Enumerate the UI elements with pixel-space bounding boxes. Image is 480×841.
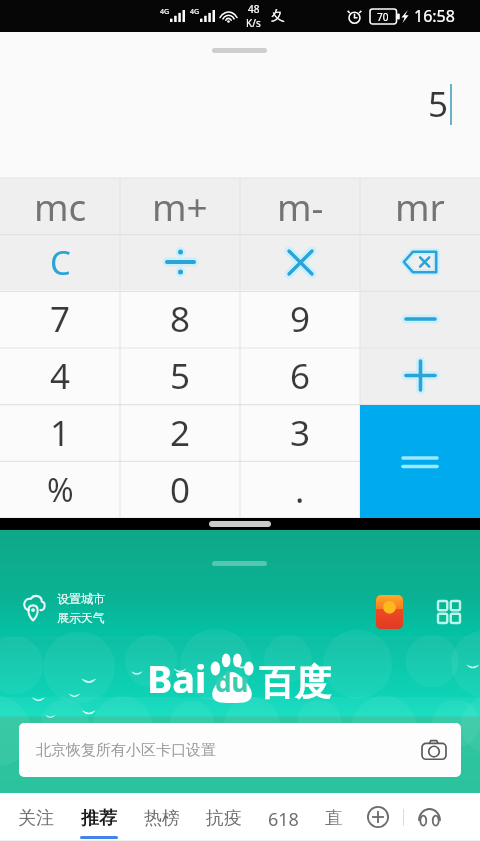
button[interactable]: C (0, 234, 120, 290)
staticText: mr (395, 181, 445, 231)
button[interactable]: 关注 (18, 793, 54, 841)
button[interactable]: 设置城市 (22, 591, 105, 625)
staticText: 北京恢复所有小区卡口设置 (36, 741, 216, 760)
button[interactable]: Red packet (376, 595, 403, 629)
staticText: 抗疫 (206, 807, 242, 830)
button[interactable]: 0 (120, 461, 240, 518)
button[interactable]: 7 (0, 290, 120, 347)
staticText: 7 (50, 295, 71, 343)
button[interactable]: % (0, 461, 120, 518)
button[interactable]: Equals (360, 405, 480, 518)
staticText: 6 (290, 352, 311, 400)
staticText: m+ (152, 181, 208, 231)
button[interactable]: Multiply (240, 234, 360, 290)
button[interactable]: . (240, 461, 360, 518)
staticText: % (47, 468, 74, 512)
staticText: 直播 (325, 807, 343, 830)
button[interactable]: 8 (120, 290, 240, 347)
staticText: 设置城市 (57, 591, 105, 606)
staticText: 百度 (259, 660, 331, 705)
button[interactable]: 北京恢复所有小区卡口设置 (19, 723, 461, 777)
button[interactable]: 直播 (325, 793, 343, 841)
staticText: . (295, 466, 305, 514)
button[interactable]: 1 (0, 404, 120, 461)
staticText: mc (34, 181, 87, 231)
staticText: 0 (170, 466, 191, 514)
button[interactable]: Add (367, 806, 389, 828)
button[interactable]: 热榜 (144, 793, 180, 841)
button[interactable]: Audio (418, 808, 441, 826)
staticText: 2 (170, 409, 191, 457)
button[interactable]: Menu (438, 601, 460, 623)
button[interactable]: 2 (120, 404, 240, 461)
staticText: 48 (248, 2, 260, 16)
staticText: 3 (290, 409, 311, 457)
staticText: 推荐 (81, 807, 117, 830)
staticText: 夊 (271, 7, 285, 25)
staticText: 关注 (18, 807, 54, 830)
button[interactable]: Minus (360, 290, 480, 347)
button[interactable]: 5 (120, 347, 240, 404)
button[interactable]: mr (360, 178, 480, 234)
staticText: 8 (170, 295, 191, 343)
staticText: m- (277, 181, 324, 231)
button[interactable]: Camera search (421, 739, 447, 761)
staticText: 618 (268, 807, 299, 832)
staticText: 70 (377, 10, 389, 24)
staticText: 展示天气 (57, 610, 105, 625)
staticText: 热榜 (144, 807, 180, 830)
button[interactable]: 618 (268, 793, 299, 841)
button[interactable]: Plus (360, 347, 480, 404)
staticText: 4 (50, 352, 71, 400)
button[interactable]: m+ (120, 178, 240, 234)
other: Baidu (147, 651, 331, 703)
button[interactable]: 6 (240, 347, 360, 404)
staticText: 1 (50, 409, 71, 457)
button[interactable]: 9 (240, 290, 360, 347)
staticText: 5 (428, 80, 449, 128)
button[interactable]: Divide (120, 234, 240, 290)
button[interactable]: m- (240, 178, 360, 234)
staticText: 4G (160, 7, 170, 17)
staticText: du (215, 664, 249, 699)
staticText: 9 (290, 295, 311, 343)
staticText: C (50, 240, 71, 285)
button[interactable]: 4 (0, 347, 120, 404)
staticText: Bai (147, 652, 207, 704)
button[interactable]: 推荐 (80, 793, 118, 841)
button[interactable]: 3 (240, 404, 360, 461)
staticText: 4G (190, 7, 200, 17)
staticText: K/s (246, 16, 261, 30)
staticText: 5 (170, 352, 191, 400)
button[interactable]: 抗疫 (206, 793, 242, 841)
staticText: 16:58 (414, 5, 455, 27)
button[interactable]: Delete (360, 234, 480, 290)
button[interactable]: mc (0, 178, 120, 234)
